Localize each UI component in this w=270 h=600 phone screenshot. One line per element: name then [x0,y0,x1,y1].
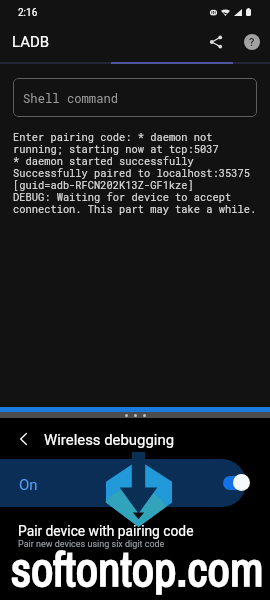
button[interactable]: Shell command [13,78,257,117]
staticText: Pair new devices using six digit code [18,539,165,550]
button[interactable]: Back [0,425,270,453]
button[interactable]: Help [241,31,263,53]
staticText: On [19,476,38,494]
staticText: Pair device with pairing code [18,523,194,539]
staticText: Enter pairing code: * daemon not [13,130,213,144]
staticText: running; starting now at tcp:5037 [13,142,219,156]
staticText: 2:16 [18,7,38,19]
staticText: Wireless debugging [44,431,175,448]
staticText: LADB [12,33,50,51]
staticText: softontop.com [11,535,264,600]
staticText: connection. This part may take a while. [13,202,257,216]
button[interactable]: On [0,459,246,507]
button[interactable]: Pair device with pairing code [0,517,270,557]
button[interactable]: Share [205,31,227,53]
other: Back [13,429,33,449]
staticText: Successfully paired to localhost:35375 [13,166,250,180]
staticText: ? [249,36,255,49]
staticText: * daemon started successfully [13,154,194,168]
staticText: DEBUG: Waiting for device to accept [13,190,232,204]
staticText: Shell command [23,90,119,106]
staticText: [guid=adb-RFCN202K13Z-GF1kze] [13,178,194,192]
button[interactable]: Wireless debugging toggle [223,476,245,490]
